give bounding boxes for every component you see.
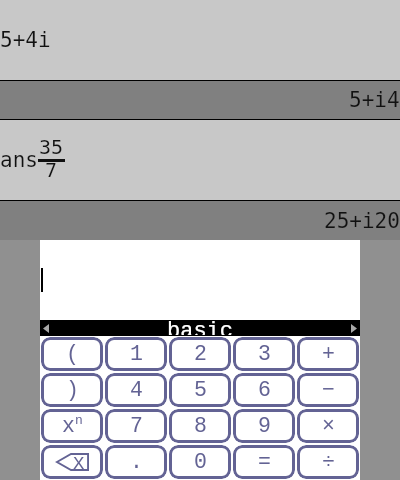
button[interactable]: − — [297, 373, 359, 407]
staticText: = — [258, 450, 271, 474]
button[interactable]: 1 — [105, 337, 167, 371]
staticText: ans — [0, 148, 38, 172]
staticText: x — [62, 414, 75, 438]
staticText: ÷ — [322, 450, 335, 474]
staticText: × — [322, 414, 335, 438]
staticText: 3 — [258, 342, 271, 366]
button[interactable]: × — [297, 409, 359, 443]
button[interactable]: 2 — [169, 337, 231, 371]
button[interactable]: 5 — [169, 373, 231, 407]
staticText: 8 — [194, 414, 207, 438]
staticText: 9 — [258, 414, 271, 438]
staticText: 1 — [130, 342, 143, 366]
button[interactable]: 7 — [105, 409, 167, 443]
staticText: 25+i20 — [324, 209, 400, 233]
staticText: 2 — [194, 342, 207, 366]
button[interactable]: . — [105, 445, 167, 479]
staticText: 5 — [194, 378, 207, 402]
staticText: X — [73, 453, 85, 471]
staticText: ) — [66, 378, 79, 402]
button[interactable]: 6 — [233, 373, 295, 407]
other: Previous keyboard — [43, 324, 49, 333]
staticText: 6 — [258, 378, 271, 402]
button[interactable]: 9 — [233, 409, 295, 443]
staticText: n — [75, 413, 83, 428]
button[interactable]: 8 — [169, 409, 231, 443]
staticText: basic — [167, 319, 234, 335]
staticText: ( — [66, 342, 79, 366]
staticText: 0 — [194, 450, 207, 474]
staticText: 4 — [130, 378, 143, 402]
button[interactable]: ( — [41, 337, 103, 371]
button[interactable]: 3 — [233, 337, 295, 371]
button[interactable]: x to the power n — [41, 409, 103, 443]
other: Next keyboard — [351, 324, 357, 333]
button[interactable]: + — [297, 337, 359, 371]
button[interactable]: = — [233, 445, 295, 479]
staticText: − — [322, 378, 335, 402]
staticText: 35 — [39, 135, 64, 158]
staticText: 5+4i — [0, 28, 51, 52]
staticText: + — [322, 342, 335, 366]
button[interactable]: 0 — [169, 445, 231, 479]
button[interactable]: ÷ — [297, 445, 359, 479]
button[interactable]: 4 — [105, 373, 167, 407]
staticText: 7 — [130, 414, 143, 438]
button[interactable]: Backspace — [41, 445, 103, 479]
staticText: 7 — [45, 158, 58, 181]
staticText: 5+i4 — [349, 88, 400, 112]
button[interactable]: ) — [41, 373, 103, 407]
staticText: . — [130, 450, 143, 474]
